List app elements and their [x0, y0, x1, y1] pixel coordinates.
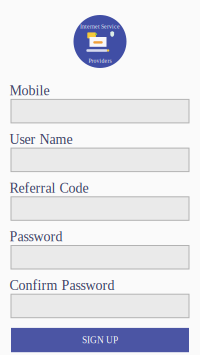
staticText: Providers [88, 58, 111, 64]
button[interactable]: SIGN UP [11, 328, 189, 352]
staticText: Internet Service [80, 23, 120, 30]
staticText: User Name [9, 131, 72, 147]
staticText: SIGN UP [82, 335, 118, 345]
staticText: Mobile [9, 83, 49, 98]
staticText: Confirm Password [9, 278, 114, 293]
staticText: Referral Code [9, 180, 88, 196]
staticText: Password [9, 229, 62, 244]
